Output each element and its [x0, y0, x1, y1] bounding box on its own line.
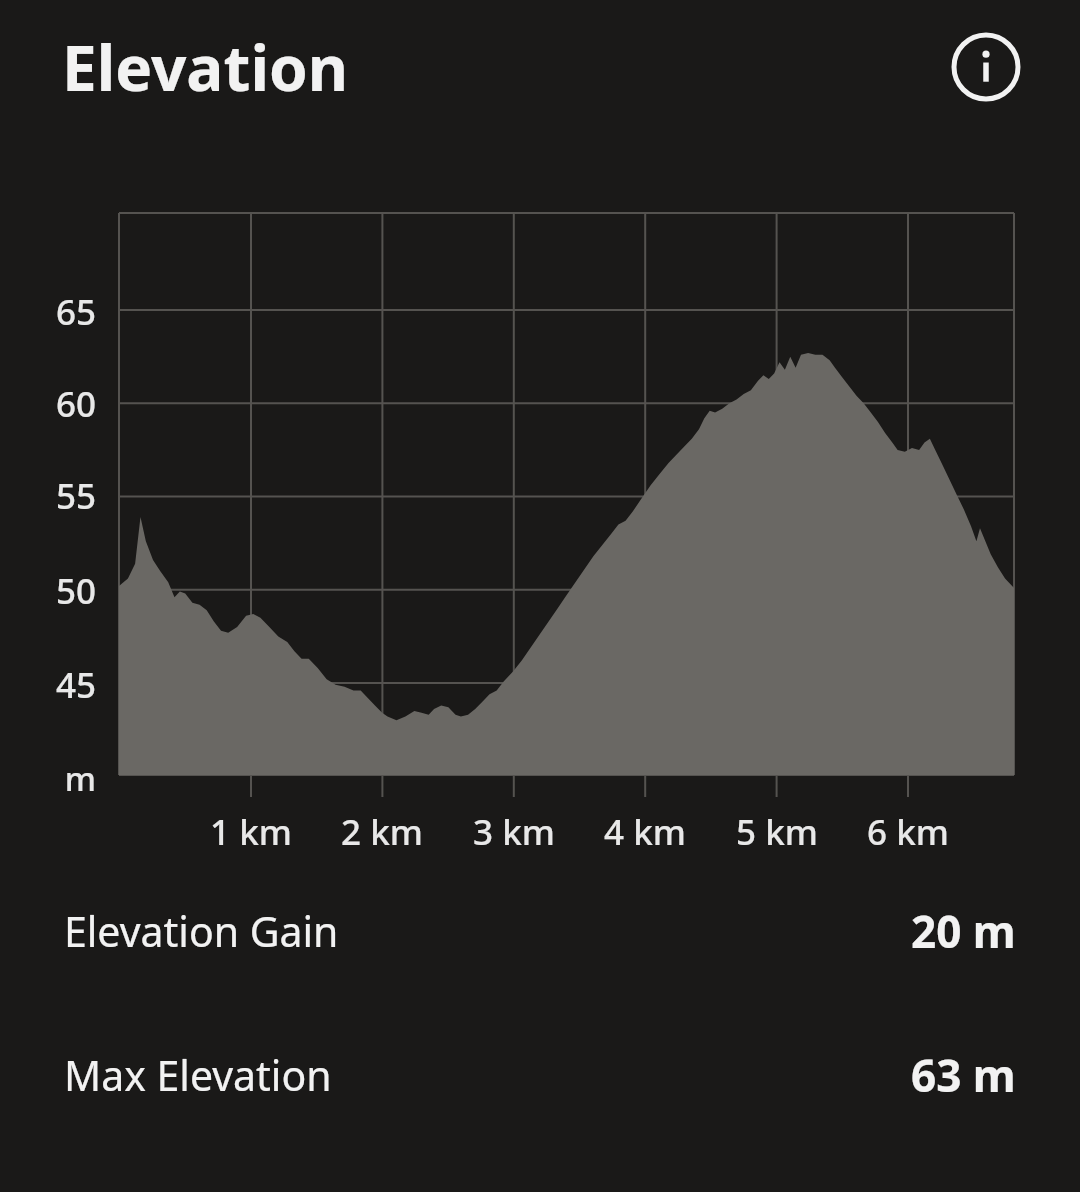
staticText: Elevation Gain — [64, 903, 339, 959]
staticText: 63 m — [911, 1045, 1016, 1105]
staticText: 55 — [55, 472, 96, 520]
staticText: m — [64, 756, 96, 801]
button[interactable]: Max Elevation — [0, 1040, 1080, 1110]
button[interactable]: Information about elevation — [950, 31, 1022, 103]
staticText: 2 km — [341, 808, 423, 856]
staticText: 50 — [55, 567, 96, 615]
staticText: 20 m — [911, 901, 1016, 961]
staticText: 1 km — [210, 808, 292, 856]
staticText: 60 — [55, 380, 96, 428]
staticText: 6 km — [867, 808, 949, 856]
staticText: Max Elevation — [64, 1047, 332, 1103]
button[interactable]: Elevation Gain — [0, 896, 1080, 966]
staticText: 4 km — [604, 808, 686, 856]
staticText: 5 km — [736, 808, 818, 856]
staticText: 65 — [55, 288, 96, 336]
staticText: 45 — [55, 661, 96, 709]
staticText: Elevation — [62, 25, 349, 109]
staticText: 3 km — [473, 808, 555, 856]
